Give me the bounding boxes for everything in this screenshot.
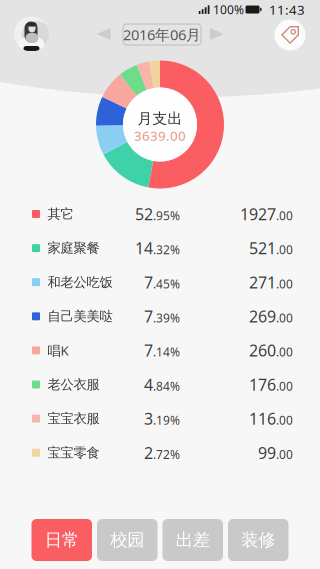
staticText: 日常 bbox=[45, 529, 79, 551]
staticText: .72% bbox=[153, 446, 180, 462]
staticText: .00 bbox=[276, 208, 293, 223]
staticText: 100% bbox=[213, 1, 244, 17]
button[interactable]: 2016年06月 bbox=[123, 24, 201, 45]
staticText: 11:43 bbox=[269, 1, 305, 18]
staticText: 自己美美哒 bbox=[47, 308, 112, 324]
staticText: .00 bbox=[276, 276, 293, 292]
staticText: 260 bbox=[249, 340, 276, 361]
staticText: 7 bbox=[144, 306, 153, 327]
button[interactable]: 装修 bbox=[228, 519, 288, 561]
staticText: 宝宝零食 bbox=[47, 444, 99, 461]
staticText: .00 bbox=[276, 242, 293, 258]
staticText: 271 bbox=[249, 272, 276, 293]
staticText: .84% bbox=[153, 378, 180, 394]
staticText: 7 bbox=[144, 272, 153, 293]
staticText: 月支出 bbox=[137, 109, 182, 127]
staticText: 99 bbox=[258, 442, 276, 463]
staticText: .32% bbox=[153, 242, 180, 258]
staticText: .45% bbox=[153, 276, 180, 292]
staticText: 176 bbox=[249, 374, 276, 395]
button[interactable]: 出差 bbox=[162, 519, 223, 561]
staticText: .00 bbox=[276, 412, 293, 428]
staticText: 2016年06月 bbox=[123, 25, 201, 44]
staticText: .95% bbox=[153, 208, 180, 223]
staticText: 52 bbox=[135, 203, 153, 225]
staticText: 宝宝衣服 bbox=[47, 410, 99, 427]
staticText: 和老公吃饭 bbox=[47, 274, 112, 290]
staticText: .00 bbox=[276, 344, 293, 360]
button[interactable]: Tags bbox=[274, 19, 305, 50]
button[interactable]: Profile bbox=[14, 16, 49, 51]
staticText: .19% bbox=[153, 412, 180, 428]
staticText: 3 bbox=[144, 408, 153, 429]
staticText: 出差 bbox=[176, 529, 210, 551]
button[interactable]: Next month bbox=[209, 28, 223, 40]
staticText: 校园 bbox=[110, 529, 144, 551]
staticText: 4 bbox=[144, 374, 153, 395]
button[interactable]: 日常 bbox=[31, 519, 92, 561]
staticText: 装修 bbox=[241, 529, 275, 551]
staticText: 家庭聚餐 bbox=[47, 240, 99, 256]
staticText: 3639.00 bbox=[134, 127, 186, 144]
staticText: 269 bbox=[249, 306, 276, 327]
staticText: 其它 bbox=[47, 206, 73, 222]
staticText: 唱K bbox=[47, 341, 68, 359]
staticText: .00 bbox=[276, 446, 293, 462]
staticText: .39% bbox=[153, 310, 180, 326]
staticText: .00 bbox=[276, 310, 293, 326]
staticText: 2 bbox=[144, 442, 153, 463]
staticText: .14% bbox=[153, 344, 180, 360]
staticText: 14 bbox=[135, 237, 153, 259]
staticText: 老公衣服 bbox=[47, 376, 99, 393]
staticText: 521 bbox=[249, 237, 276, 259]
staticText: .00 bbox=[276, 378, 293, 394]
staticText: 7 bbox=[144, 340, 153, 361]
button[interactable]: 校园 bbox=[97, 519, 157, 561]
staticText: 1927 bbox=[240, 203, 276, 225]
staticText: 116 bbox=[249, 408, 276, 429]
button[interactable]: Previous month bbox=[97, 28, 111, 40]
